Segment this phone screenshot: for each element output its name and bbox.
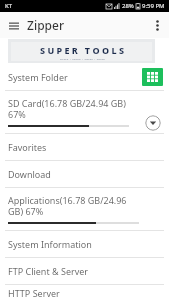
staticText: Applications(16.78 GB/24.96 GB) 67% (8, 194, 139, 217)
button[interactable]: Open navigation menu (5, 17, 22, 34)
button[interactable]: System Information (0, 231, 169, 257)
staticText: KT (5, 2, 13, 10)
button[interactable]: Super Tools advertisement (8, 39, 155, 63)
button[interactable]: System Folder (0, 64, 169, 90)
staticText: System Folder (8, 71, 142, 83)
button[interactable]: SD Card(16.78 GB/24.94 GB) 67% (0, 91, 169, 133)
button[interactable]: More options (149, 17, 166, 34)
staticText: FTP Client & Server (8, 265, 89, 277)
button[interactable]: HTTP Server (0, 285, 169, 300)
button[interactable]: FTP Client & Server (0, 258, 169, 284)
staticText: Zipper (27, 17, 64, 33)
staticText: SD Card(16.78 GB/24.94 GB) 67% (8, 97, 129, 120)
button[interactable]: Applications(16.78 GB/24.96 GB) 67% (0, 188, 169, 230)
button[interactable]: Expand SD Card details (145, 115, 161, 131)
button[interactable]: Favorites (0, 134, 169, 160)
staticText: Download (8, 168, 51, 180)
staticText: S U P E R T O O L S (40, 44, 124, 56)
staticText: ZIPPER | ZIPPER | ZIPPER | ZIPPER (60, 57, 105, 60)
staticText: 9:59 PM (142, 2, 165, 10)
button[interactable]: Download (0, 161, 169, 187)
button[interactable]: App grid (142, 68, 163, 86)
staticText: Favorites (8, 141, 47, 153)
staticText: 28% (122, 2, 134, 10)
staticText: System Information (8, 238, 92, 250)
staticText: HTTP Server (8, 287, 60, 299)
